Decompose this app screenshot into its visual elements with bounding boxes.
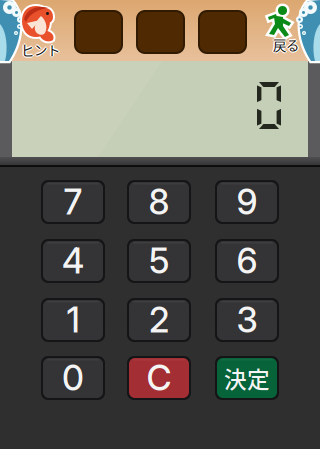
button[interactable]: 9 <box>215 180 279 224</box>
button[interactable]: 7 <box>41 180 105 224</box>
staticText: ヒント <box>20 40 59 59</box>
button[interactable]: 決定 <box>215 356 279 400</box>
staticText: ヒント <box>21 39 60 58</box>
button[interactable]: 8 <box>127 180 191 224</box>
staticText: 0 <box>62 357 84 399</box>
button[interactable]: 6 <box>215 239 279 283</box>
staticText: ヒント <box>22 40 61 59</box>
staticText: 8 <box>148 181 169 223</box>
staticText: 5 <box>149 240 169 282</box>
button[interactable]: 0 <box>41 356 105 400</box>
staticText: 9 <box>236 181 257 223</box>
staticText: 決定 <box>224 362 270 394</box>
staticText: 4 <box>62 240 84 282</box>
staticText: 戻る <box>272 35 298 54</box>
button[interactable]: 4 <box>41 239 105 283</box>
staticText: 7 <box>63 181 82 223</box>
staticText: 戻る <box>273 34 299 53</box>
staticText: C <box>146 357 171 399</box>
button[interactable]: ヒント <box>0 0 74 61</box>
button[interactable]: 戻る <box>262 0 318 61</box>
button[interactable]: 5 <box>127 239 191 283</box>
button[interactable]: 3 <box>215 298 279 342</box>
button[interactable]: C <box>127 356 191 400</box>
button[interactable]: 2 <box>127 298 191 342</box>
button[interactable]: 1 <box>41 298 105 342</box>
staticText: 戻る <box>274 35 300 54</box>
staticText: ヒント <box>21 41 60 61</box>
staticText: ヒント <box>21 40 60 59</box>
staticText: 1 <box>66 299 79 341</box>
staticText: 戻る <box>273 35 299 54</box>
staticText: 6 <box>236 240 257 282</box>
staticText: 戻る <box>273 36 299 56</box>
staticText: 3 <box>236 299 257 341</box>
staticText: 2 <box>149 299 169 341</box>
